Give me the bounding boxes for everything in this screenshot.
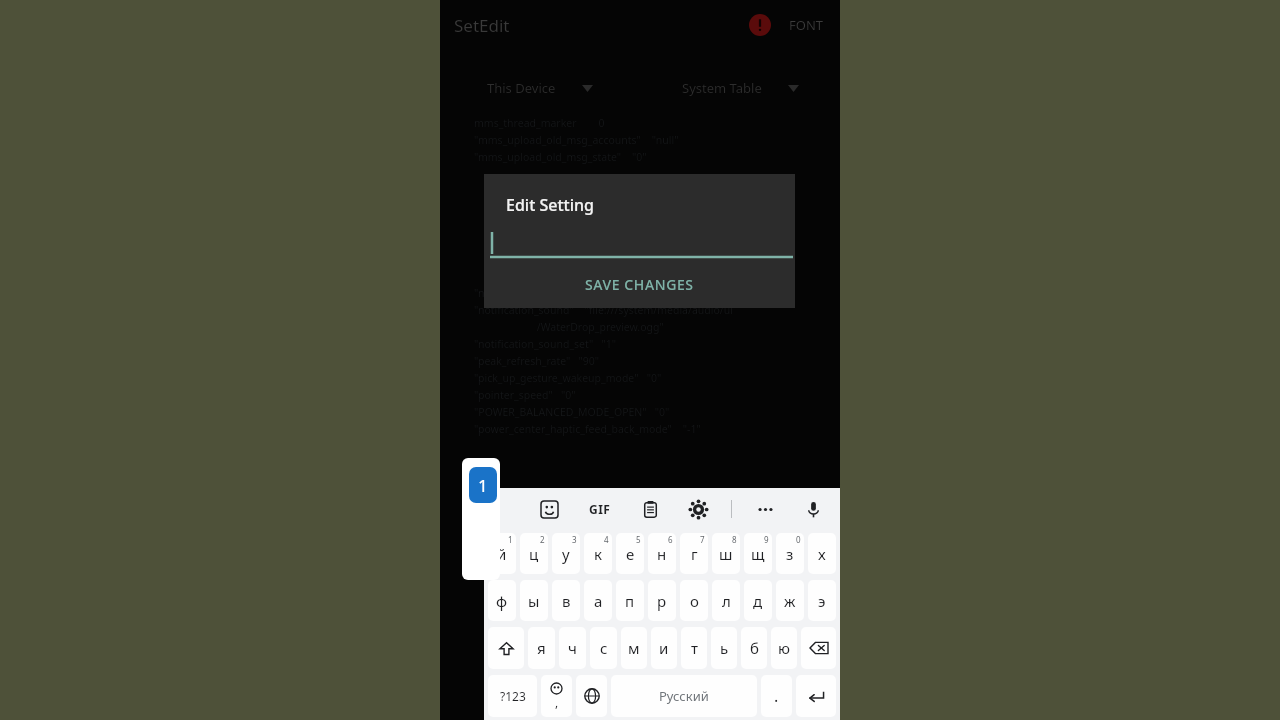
button[interactable]: е (616, 533, 644, 574)
staticText: н (657, 544, 667, 564)
button[interactable]: ч (559, 627, 586, 669)
button[interactable]: Space (611, 675, 757, 717)
button[interactable]: э (808, 580, 836, 621)
staticText: SetEdit (454, 14, 510, 37)
staticText: This Device (487, 79, 556, 97)
button[interactable]: ф (488, 580, 516, 621)
button[interactable]: м (621, 627, 647, 669)
button[interactable]: т (681, 627, 707, 669)
button[interactable]: ю (771, 627, 797, 669)
button[interactable]: Warning (745, 10, 775, 40)
staticText: 2 (540, 534, 545, 545)
staticText: 5 (636, 534, 641, 545)
button[interactable]: л (712, 580, 740, 621)
button[interactable]: у (552, 533, 580, 574)
button[interactable]: и (651, 627, 677, 669)
staticText: 3 (572, 534, 577, 545)
staticText: й (497, 544, 507, 564)
button[interactable]: с (590, 627, 617, 669)
staticText: ч (568, 638, 577, 658)
button[interactable]: п (616, 580, 644, 621)
button[interactable]: й (488, 533, 516, 574)
staticText: с (600, 638, 608, 658)
button[interactable]: х (808, 533, 836, 574)
button[interactable]: б (741, 627, 767, 669)
button[interactable]: н (648, 533, 676, 574)
button[interactable]: Clipboard (635, 494, 665, 524)
staticText: ц (529, 544, 539, 564)
button[interactable]: я (528, 627, 555, 669)
button[interactable]: SAVE CHANGES (484, 260, 795, 308)
button[interactable]: . (761, 675, 792, 717)
staticText: м (628, 638, 640, 658)
staticText: 4 (604, 534, 609, 545)
button[interactable]: System Table (640, 72, 840, 104)
staticText: ю (778, 638, 790, 658)
staticText: , (555, 694, 559, 710)
button[interactable]: This Device (440, 72, 640, 104)
staticText: д (753, 591, 763, 611)
staticText: Русский (659, 687, 709, 705)
button[interactable]: р (648, 580, 676, 621)
button[interactable]: з (776, 533, 804, 574)
button[interactable]: Settings (683, 494, 713, 524)
staticText: р (657, 591, 667, 611)
staticText: и (659, 638, 669, 658)
button[interactable]: Change language (576, 675, 607, 717)
button[interactable]: GIF (583, 495, 617, 523)
staticText: 9 (764, 534, 769, 545)
staticText: ж (784, 591, 796, 611)
staticText: GIF (589, 501, 611, 517)
button[interactable]: ?123 (488, 675, 537, 717)
button[interactable]: ц (520, 533, 548, 574)
staticText: э (818, 591, 826, 611)
button[interactable]: о (680, 580, 708, 621)
button[interactable]: FONT (787, 16, 826, 34)
staticText: ф (496, 591, 508, 611)
staticText: б (750, 638, 759, 658)
button[interactable]: Emoji and comma (541, 675, 572, 717)
button[interactable]: Shift (488, 627, 524, 669)
button[interactable]: д (744, 580, 772, 621)
staticText: п (625, 591, 635, 611)
staticText: к (594, 544, 602, 564)
button[interactable]: ш (712, 533, 740, 574)
button[interactable]: Voice input (798, 494, 828, 524)
staticText: т (691, 638, 698, 658)
staticText: ь (720, 638, 729, 658)
button[interactable]: в (552, 580, 580, 621)
button[interactable]: ь (711, 627, 737, 669)
button[interactable]: Backspace (801, 627, 836, 669)
button[interactable]: More (750, 494, 780, 524)
staticText: ш (719, 544, 733, 564)
button[interactable]: к (584, 533, 612, 574)
staticText: 7 (700, 534, 705, 545)
button[interactable]: щ (744, 533, 772, 574)
staticText: я (537, 638, 546, 658)
staticText: 8 (732, 534, 737, 545)
staticText: г (691, 544, 698, 564)
button[interactable]: Sticker (534, 494, 564, 524)
button[interactable]: ы (520, 580, 548, 621)
button[interactable]: г (680, 533, 708, 574)
button[interactable]: а (584, 580, 612, 621)
staticText: л (722, 591, 731, 611)
staticText: "POWER_BALANCED_MODE_OPEN" "0" (474, 405, 830, 422)
button[interactable]: Enter (796, 675, 836, 717)
button[interactable] (490, 230, 793, 260)
staticText: "power_center_haptic_feed_back_mode" "-1… (474, 422, 830, 439)
staticText: а (594, 591, 603, 611)
staticText: з (786, 544, 794, 564)
button[interactable]: ж (776, 580, 804, 621)
staticText: 0 (796, 534, 801, 545)
staticText: в (562, 591, 571, 611)
staticText: щ (751, 544, 765, 564)
staticText: о (690, 591, 699, 611)
